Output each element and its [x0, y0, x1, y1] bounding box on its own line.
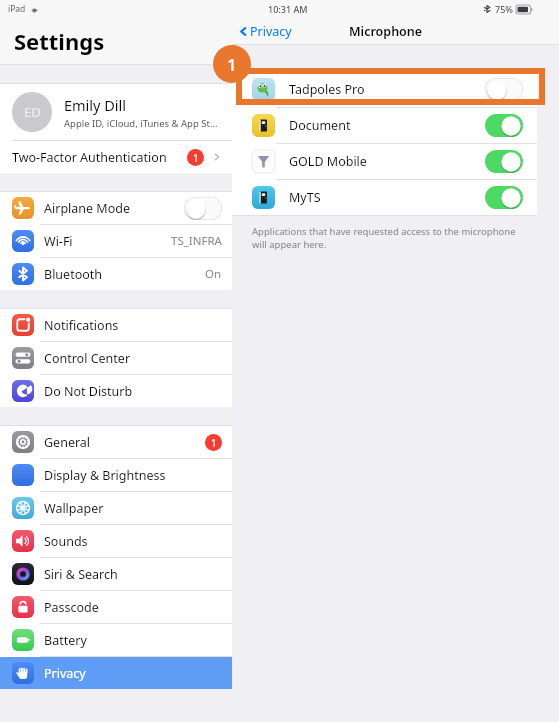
staticText: iPad — [8, 3, 26, 15]
button[interactable]: Privacy — [232, 19, 300, 44]
button[interactable]: Do Not Disturb — [0, 375, 232, 407]
staticText: 75% — [495, 3, 513, 15]
button[interactable]: Passcode — [0, 591, 232, 623]
button[interactable]: Display & Brightness — [0, 459, 232, 491]
button[interactable]: Tadpoles Pro — [232, 72, 537, 107]
button[interactable]: Airplane Mode — [0, 192, 232, 224]
staticText: Airplane Mode — [44, 200, 184, 217]
button[interactable]: Document — [232, 108, 537, 143]
staticText: Notifications — [44, 317, 222, 334]
button[interactable]: Sounds — [0, 525, 232, 557]
staticText: Sounds — [44, 533, 222, 550]
staticText: GOLD Mobile — [289, 153, 485, 170]
button[interactable]: General — [0, 426, 232, 458]
staticText: 1 — [227, 53, 237, 76]
staticText: Bluetooth — [44, 266, 205, 283]
staticText: Privacy — [250, 23, 292, 40]
button[interactable]: Notifications — [0, 309, 232, 341]
staticText: 1 — [211, 436, 217, 450]
staticText: Passcode — [44, 599, 222, 616]
staticText: Wallpaper — [44, 500, 222, 517]
button[interactable]: On — [485, 186, 523, 209]
staticText: Do Not Disturb — [44, 383, 222, 400]
button[interactable]: Bluetooth — [0, 258, 232, 290]
staticText: Privacy — [44, 665, 222, 682]
staticText: Control Center — [44, 350, 222, 367]
staticText: Emily Dill — [64, 95, 127, 115]
button[interactable]: Privacy — [0, 657, 232, 689]
button[interactable]: ED — [0, 84, 232, 140]
staticText: Microphone — [349, 23, 423, 40]
staticText: 10:31 AM — [268, 3, 308, 15]
button[interactable]: Off — [184, 197, 222, 220]
staticText: Display & Brightness — [44, 467, 222, 484]
button[interactable]: On — [485, 150, 523, 173]
staticText: General — [44, 434, 205, 451]
button[interactable]: Off — [485, 78, 523, 101]
staticText: TS_INFRA — [171, 233, 222, 249]
staticText: Applications that have requested access … — [252, 225, 519, 251]
staticText: Two-Factor Authentication — [12, 149, 187, 166]
button[interactable]: Wallpaper — [0, 492, 232, 524]
staticText: MyTS — [289, 189, 485, 206]
staticText: On — [205, 266, 222, 282]
button[interactable]: Two-Factor Authentication — [0, 141, 232, 173]
staticText: Document — [289, 117, 485, 134]
staticText: Apple ID, iCloud, iTunes & App St… — [64, 117, 218, 130]
staticText: 1 — [193, 151, 199, 165]
staticText: ED — [24, 103, 41, 121]
button[interactable]: Control Center — [0, 342, 232, 374]
button[interactable]: Wi-Fi — [0, 225, 232, 257]
staticText: Siri & Search — [44, 566, 222, 583]
staticText: Wi-Fi — [44, 233, 171, 250]
button[interactable]: Battery — [0, 624, 232, 656]
button[interactable]: Siri & Search — [0, 558, 232, 590]
staticText: Settings — [14, 26, 105, 56]
button[interactable]: GOLD Mobile — [232, 144, 537, 179]
button[interactable]: On — [485, 114, 523, 137]
staticText: Tadpoles Pro — [289, 81, 485, 98]
button[interactable]: MyTS — [232, 180, 537, 215]
staticText: Battery — [44, 632, 222, 649]
